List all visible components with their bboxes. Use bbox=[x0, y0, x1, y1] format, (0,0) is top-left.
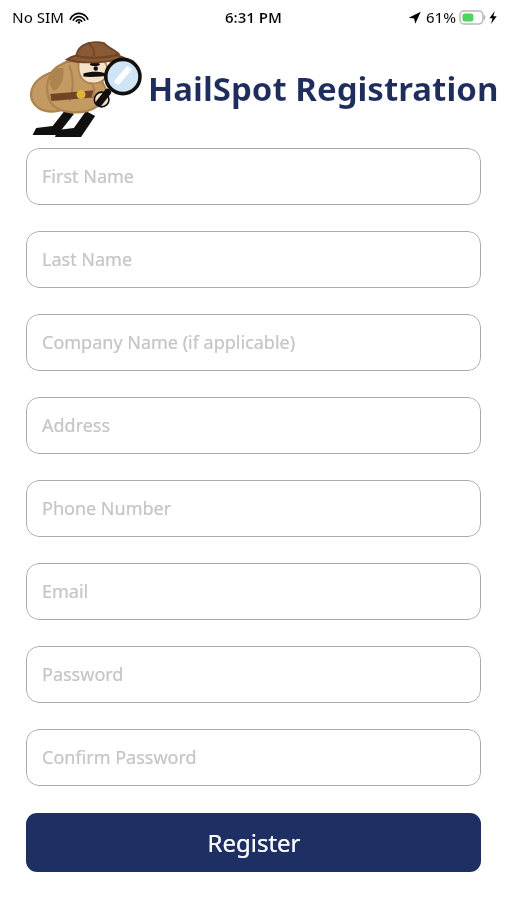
staticText: Address bbox=[42, 413, 111, 438]
button[interactable]: Last Name bbox=[26, 231, 481, 288]
staticText: No SIM bbox=[12, 7, 65, 27]
staticText: 6:31 PM bbox=[225, 7, 282, 27]
button[interactable]: Email bbox=[26, 563, 481, 620]
button[interactable]: Phone Number bbox=[26, 480, 481, 537]
button[interactable]: Confirm Password bbox=[26, 729, 481, 786]
staticText: First Name bbox=[42, 164, 134, 189]
other: HailSpot detective logo bbox=[22, 38, 140, 138]
staticText: Email bbox=[42, 579, 89, 604]
staticText: Confirm Password bbox=[42, 745, 197, 770]
staticText: Register bbox=[207, 826, 301, 859]
staticText: HailSpot Registration bbox=[148, 66, 499, 111]
button[interactable]: First Name bbox=[26, 148, 481, 205]
staticText: Company Name (if applicable) bbox=[42, 330, 296, 355]
button[interactable]: Password bbox=[26, 646, 481, 703]
staticText: Last Name bbox=[42, 247, 133, 272]
staticText: Password bbox=[42, 662, 124, 687]
button[interactable]: Register bbox=[26, 813, 481, 872]
button[interactable]: Address bbox=[26, 397, 481, 454]
staticText: Phone Number bbox=[42, 496, 172, 521]
staticText: 61% bbox=[426, 7, 456, 27]
button[interactable]: Company Name (if applicable) bbox=[26, 314, 481, 371]
